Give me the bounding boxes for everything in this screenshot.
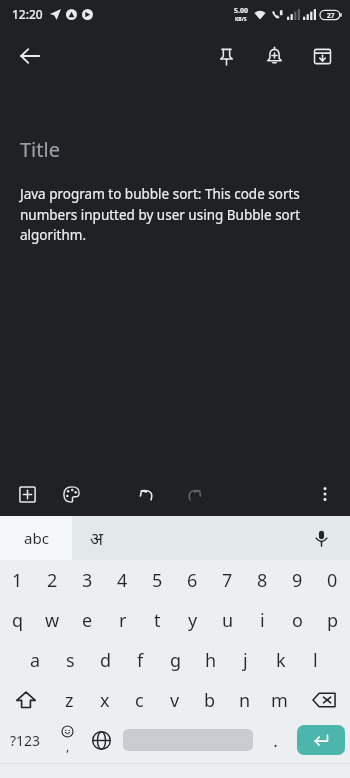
- staticText: .: [273, 729, 278, 752]
- staticText: 4: [117, 568, 128, 593]
- button[interactable]: Add: [10, 477, 44, 511]
- staticText: o: [292, 608, 303, 633]
- button[interactable]: 9: [280, 560, 315, 600]
- button[interactable]: abc: [0, 516, 72, 560]
- staticText: f: [137, 648, 144, 673]
- button[interactable]: ?123: [0, 720, 50, 760]
- button[interactable]: d: [88, 640, 123, 680]
- staticText: 5.00: [234, 6, 248, 16]
- button[interactable]: e: [70, 600, 105, 640]
- staticText: j: [243, 648, 248, 673]
- button[interactable]: w: [35, 600, 70, 640]
- staticText: 5: [152, 568, 163, 593]
- staticText: अ: [90, 527, 103, 550]
- button[interactable]: 3: [70, 560, 105, 600]
- staticText: Title: [20, 136, 60, 163]
- staticText: l: [313, 648, 318, 673]
- button[interactable]: Redo: [177, 477, 211, 511]
- button[interactable]: 0: [315, 560, 350, 600]
- staticText: 6: [187, 568, 198, 593]
- button[interactable]: v: [157, 680, 192, 720]
- button[interactable]: Emoji: [50, 720, 84, 760]
- button[interactable]: r: [105, 600, 140, 640]
- staticText: k: [276, 648, 286, 673]
- button[interactable]: u: [210, 600, 245, 640]
- staticText: x: [100, 688, 110, 713]
- button[interactable]: Change color: [54, 477, 88, 511]
- staticText: u: [222, 608, 234, 633]
- staticText: g: [170, 648, 182, 673]
- staticText: w: [45, 608, 60, 633]
- staticText: 12:20: [12, 6, 43, 22]
- button[interactable]: q: [0, 600, 35, 640]
- staticText: 3: [82, 568, 93, 593]
- button[interactable]: 8: [245, 560, 280, 600]
- button[interactable]: m: [262, 680, 297, 720]
- button[interactable]: h: [193, 640, 228, 680]
- staticText: c: [135, 688, 144, 713]
- staticText: 7: [222, 568, 233, 593]
- button[interactable]: l: [298, 640, 333, 680]
- button[interactable]: j: [228, 640, 263, 680]
- staticText: b: [204, 688, 216, 713]
- staticText: p: [327, 608, 339, 633]
- staticText: e: [82, 608, 93, 633]
- button[interactable]: Back: [8, 34, 52, 78]
- button[interactable]: k: [263, 640, 298, 680]
- button[interactable]: p: [315, 600, 350, 640]
- button[interactable]: c: [122, 680, 157, 720]
- staticText: n: [239, 688, 251, 713]
- staticText: z: [65, 688, 74, 713]
- staticText: 9: [292, 568, 303, 593]
- staticText: t: [154, 608, 161, 633]
- button[interactable]: [118, 720, 258, 760]
- button[interactable]: Change language: [84, 720, 118, 760]
- button[interactable]: अ: [90, 527, 103, 550]
- button[interactable]: Add reminder: [254, 36, 294, 76]
- staticText: Java program to bubble sort: This code s…: [20, 185, 330, 244]
- button[interactable]: t: [140, 600, 175, 640]
- staticText: i: [260, 608, 265, 633]
- staticText: KB/S: [235, 16, 247, 23]
- button[interactable]: o: [280, 600, 315, 640]
- button[interactable]: Voice input: [306, 523, 336, 553]
- button[interactable]: n: [227, 680, 262, 720]
- button[interactable]: g: [158, 640, 193, 680]
- button[interactable]: b: [192, 680, 227, 720]
- button[interactable]: y: [175, 600, 210, 640]
- button[interactable]: Enter: [292, 720, 350, 760]
- staticText: q: [12, 608, 24, 633]
- button[interactable]: z: [52, 680, 87, 720]
- button[interactable]: 4: [105, 560, 140, 600]
- staticText: r: [119, 608, 127, 633]
- staticText: m: [271, 688, 288, 713]
- staticText: d: [100, 648, 112, 673]
- button[interactable]: 7: [210, 560, 245, 600]
- button[interactable]: 2: [35, 560, 70, 600]
- staticText: abc: [24, 528, 49, 548]
- button[interactable]: 5: [140, 560, 175, 600]
- button[interactable]: Backspace: [297, 680, 350, 720]
- staticText: 0: [327, 568, 338, 593]
- staticText: ,: [66, 737, 70, 755]
- button[interactable]: Shift: [0, 680, 52, 720]
- staticText: 8: [257, 568, 268, 593]
- staticText: a: [30, 648, 41, 673]
- button[interactable]: 6: [175, 560, 210, 600]
- staticText: 2: [47, 568, 58, 593]
- button[interactable]: a: [17, 640, 53, 680]
- button[interactable]: Pin: [206, 36, 246, 76]
- button[interactable]: Archive: [302, 36, 342, 76]
- button[interactable]: Undo: [129, 477, 163, 511]
- button[interactable]: i: [245, 600, 280, 640]
- button[interactable]: 1: [0, 560, 35, 600]
- button[interactable]: .: [258, 720, 292, 760]
- button[interactable]: More options: [308, 477, 342, 511]
- staticText: 1: [12, 568, 23, 593]
- staticText: y: [188, 608, 198, 633]
- staticText: ?123: [10, 731, 41, 750]
- button[interactable]: s: [53, 640, 88, 680]
- button[interactable]: f: [123, 640, 158, 680]
- button[interactable]: x: [87, 680, 122, 720]
- staticText: v: [170, 688, 180, 713]
